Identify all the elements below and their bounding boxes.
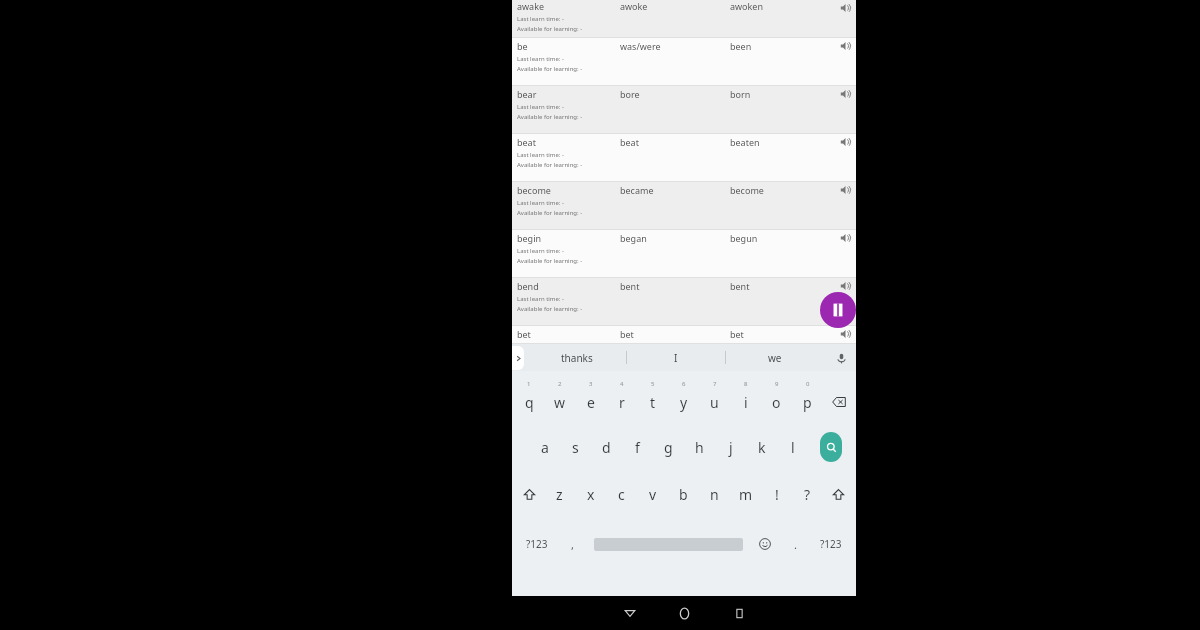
button[interactable]: ?123 (810, 517, 852, 571)
button[interactable]: h (684, 423, 715, 471)
staticText: bent (730, 280, 830, 292)
button[interactable]: ? (792, 471, 823, 517)
button[interactable]: Home (657, 596, 712, 630)
button[interactable]: be (512, 38, 856, 86)
staticText: 4 (620, 380, 624, 388)
button[interactable]: Open dictionary (820, 292, 856, 328)
button[interactable]: Pronounce be (838, 39, 852, 53)
button[interactable]: d (591, 423, 622, 471)
button[interactable]: n (699, 471, 730, 517)
button[interactable]: Backspace (823, 375, 854, 423)
staticText: e (587, 393, 595, 412)
staticText: began (620, 232, 730, 244)
button[interactable]: . (781, 517, 810, 571)
button[interactable]: begin (512, 230, 856, 278)
button[interactable]: c (606, 471, 637, 517)
staticText: s (572, 438, 579, 457)
button[interactable]: Voice input (832, 349, 850, 367)
button[interactable]: beat (512, 134, 856, 182)
button[interactable]: 1 (514, 375, 544, 423)
button[interactable]: l (777, 423, 808, 471)
button[interactable]: bet (512, 326, 856, 344)
staticText: x (587, 485, 595, 504)
staticText: Last learn time: - (517, 15, 564, 23)
button[interactable]: Pronounce beat (838, 135, 852, 149)
button[interactable]: g (653, 423, 684, 471)
staticText: Last learn time: - (517, 55, 564, 63)
staticText: ?123 (820, 537, 842, 551)
staticText: r (619, 393, 625, 412)
staticText: 0 (806, 380, 810, 388)
staticText: beat (517, 136, 625, 148)
staticText: n (710, 485, 719, 504)
staticText: 5 (651, 380, 655, 388)
button[interactable]: 2 (544, 375, 575, 423)
button[interactable]: Recent apps (712, 596, 767, 630)
staticText: begin (517, 232, 625, 244)
staticText: l (791, 438, 795, 457)
button[interactable]: Back (602, 596, 657, 630)
button[interactable]: s (560, 423, 591, 471)
button[interactable]: 5 (637, 375, 668, 423)
button[interactable]: f (622, 423, 653, 471)
staticText: o (772, 393, 781, 412)
button[interactable]: 3 (575, 375, 606, 423)
button[interactable]: 7 (699, 375, 730, 423)
staticText: z (556, 485, 563, 504)
button[interactable]: Caps lock (823, 471, 854, 517)
button[interactable]: j (715, 423, 746, 471)
staticText: y (680, 393, 688, 412)
button[interactable]: b (668, 471, 699, 517)
button[interactable]: 4 (606, 375, 637, 423)
button[interactable]: v (637, 471, 668, 517)
button[interactable]: m (730, 471, 761, 517)
button[interactable]: k (746, 423, 777, 471)
button[interactable]: thanks (528, 344, 626, 371)
button[interactable]: Pronounce bend (838, 279, 852, 293)
staticText: 2 (558, 380, 562, 388)
button[interactable]: Pronounce awake (838, 1, 852, 15)
button[interactable]: a (529, 423, 560, 471)
button[interactable]: Pronounce become (838, 183, 852, 197)
button[interactable]: Pronounce begin (838, 231, 852, 245)
button[interactable]: Search (820, 432, 842, 462)
staticText: Last learn time: - (517, 247, 564, 255)
button[interactable]: Emoji (749, 517, 781, 571)
staticText: begun (730, 232, 830, 244)
button[interactable]: I (627, 344, 725, 371)
staticText: I (674, 351, 678, 365)
button[interactable]: , (558, 517, 587, 571)
button[interactable]: 8 (730, 375, 761, 423)
staticText: b (679, 485, 688, 504)
staticText: i (744, 393, 748, 412)
staticText: t (650, 393, 656, 412)
button[interactable]: bend (512, 278, 856, 326)
button[interactable]: Shift (514, 471, 544, 517)
staticText: u (710, 393, 719, 412)
button[interactable]: 6 (668, 375, 699, 423)
staticText: bet (517, 328, 625, 340)
staticText: bet (730, 328, 830, 340)
staticText: became (620, 184, 730, 196)
button[interactable]: Pronounce bet (838, 327, 852, 341)
staticText: become (730, 184, 830, 196)
staticText: v (649, 485, 657, 504)
staticText: thanks (561, 351, 593, 365)
button[interactable]: x (575, 471, 606, 517)
button[interactable]: ! (761, 471, 792, 517)
button[interactable]: awake (512, 0, 856, 38)
button[interactable]: Pronounce bear (838, 87, 852, 101)
button[interactable]: z (544, 471, 575, 517)
button[interactable]: bear (512, 86, 856, 134)
button[interactable]: ?123 (516, 517, 558, 571)
staticText: w (554, 393, 566, 412)
button[interactable]: 9 (761, 375, 792, 423)
button[interactable]: we (726, 344, 824, 371)
button[interactable]: become (512, 182, 856, 230)
button[interactable]: Expand suggestions (512, 346, 524, 370)
button[interactable]: 0 (792, 375, 823, 423)
staticText: d (602, 438, 611, 457)
button[interactable]: Space (587, 517, 749, 571)
staticText: Available for learning: - (517, 25, 583, 33)
